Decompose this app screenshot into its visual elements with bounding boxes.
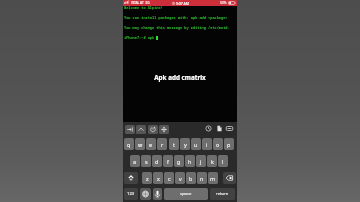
staticText: q [127,141,131,148]
button[interactable]: p [224,138,234,150]
button[interactable]: k [207,155,217,167]
staticText: u [194,141,198,148]
button[interactable]: m [208,172,218,184]
staticText: r [161,141,164,148]
staticText: 53% [220,1,227,5]
button[interactable]: r [157,138,167,150]
button[interactable]: v [175,172,185,184]
button[interactable]: Dictate [153,188,162,200]
button[interactable]: z [142,172,152,184]
button[interactable]: a [130,155,140,167]
staticText: z [146,175,149,182]
button[interactable]: Control [136,125,146,134]
staticText: h [188,158,192,165]
staticText: t [173,141,175,148]
button[interactable]: o [213,138,223,150]
staticText: e [149,141,153,148]
staticText: g [177,158,181,165]
staticText: j [200,158,202,165]
button[interactable]: w [135,138,145,150]
staticText: You can install packages with: apk add <… [124,15,228,20]
button[interactable]: b [186,172,196,184]
staticText: m [210,175,216,182]
button[interactable]: Tab [125,125,135,134]
button[interactable]: Paste [216,125,223,132]
button[interactable]: d [152,155,162,167]
button[interactable]: l [218,155,228,167]
staticText: VITAL AT 3G [131,1,150,5]
staticText: k [211,158,214,165]
staticText: o [216,141,220,148]
button[interactable]: h [185,155,195,167]
button[interactable]: 123 [124,188,138,200]
staticText: l [222,158,224,165]
button[interactable]: y [180,138,190,150]
staticText: return [216,191,229,197]
button[interactable]: Hide keyboard [226,125,233,132]
button[interactable]: Command history [205,125,212,132]
staticText: c [168,175,171,182]
staticText: a [133,158,137,165]
button[interactable]: t [169,138,179,150]
staticText: y [184,141,187,148]
button[interactable]: q [124,138,134,150]
staticText: Welcome to Alpine! [124,5,163,10]
button[interactable]: n [197,172,207,184]
button[interactable]: i [202,138,212,150]
staticText: p [227,141,231,148]
staticText: x [157,175,160,182]
staticText: 9:07 AM [176,1,189,6]
staticText: Apk add cmatrix [154,73,206,82]
staticText: d [155,158,159,165]
staticText: space [180,191,192,197]
staticText: w [138,141,143,148]
staticText: You may change this message by editing /… [124,25,230,30]
staticText: 123 [127,191,135,197]
staticText: iPhone7:~# apk [124,35,155,40]
button[interactable]: VITAL AT 3G [123,0,237,6]
button[interactable]: s [141,155,151,167]
button[interactable]: Next keyboard [140,188,151,200]
button[interactable]: f [163,155,173,167]
staticText: b [189,175,193,182]
button[interactable]: g [174,155,184,167]
button[interactable]: space [164,188,208,200]
staticText: v [179,175,182,182]
button[interactable]: Escape [148,125,158,134]
button[interactable]: Shift [124,172,138,184]
staticText: n [200,175,204,182]
staticText: f [167,158,169,165]
staticText: i [206,141,208,148]
button[interactable]: return [210,188,235,200]
button[interactable]: x [153,172,163,184]
staticText: s [145,158,148,165]
button[interactable]: e [146,138,156,150]
button[interactable]: j [196,155,206,167]
button[interactable]: u [191,138,201,150]
button[interactable]: Move cursor [159,125,169,134]
button[interactable]: Backspace [223,172,236,184]
button[interactable]: c [164,172,174,184]
